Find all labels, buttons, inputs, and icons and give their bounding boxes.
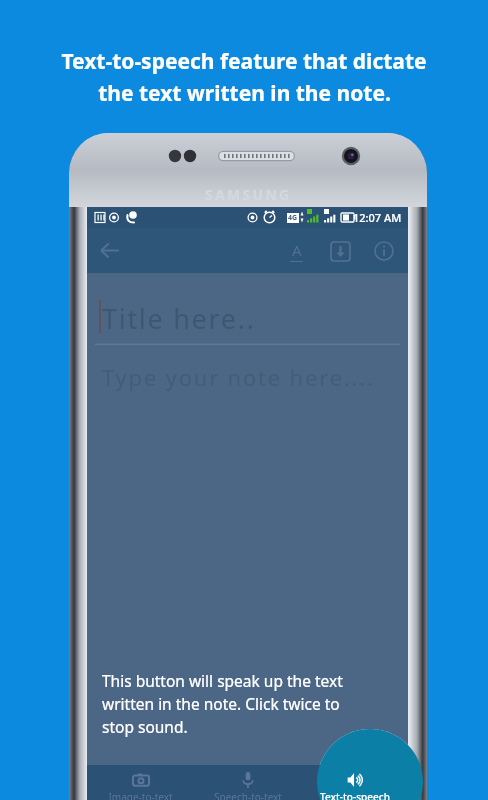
staticText: 12:07 AM	[353, 210, 402, 225]
button[interactable]: Text format	[274, 229, 318, 273]
staticText: Type your note here....	[102, 362, 375, 392]
staticText: Image-to-text	[108, 790, 173, 800]
staticText: Text-to-speech feature that dictate	[61, 47, 427, 76]
button[interactable]: Save	[318, 229, 362, 273]
staticText: Text-to-speech	[320, 790, 390, 800]
staticText: the text written in the note.	[98, 79, 391, 108]
staticText: written in the note. Click twice to	[102, 693, 340, 714]
button[interactable]: Back	[87, 228, 132, 273]
staticText: This button will speak up the text	[102, 670, 343, 691]
staticText: Speech-to-text	[214, 790, 282, 800]
staticText: SAMSUNG	[205, 185, 292, 204]
staticText: 4G	[288, 213, 298, 223]
button[interactable]: Text-to-speech	[301, 765, 408, 800]
staticText: Title here..	[102, 300, 256, 337]
staticText: A	[292, 240, 302, 260]
button[interactable]: Info	[362, 229, 406, 273]
button[interactable]: Speech-to-text	[194, 765, 301, 800]
button[interactable]: Image-to-text	[87, 765, 194, 800]
staticText: stop sound.	[102, 716, 188, 737]
